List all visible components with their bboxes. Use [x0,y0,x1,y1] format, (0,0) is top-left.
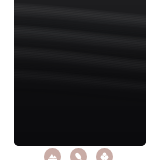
button[interactable]: Nature [70,148,87,160]
button[interactable]: Favourites [96,148,113,160]
button[interactable]: Photos [44,148,61,160]
button[interactable] [14,0,146,146]
